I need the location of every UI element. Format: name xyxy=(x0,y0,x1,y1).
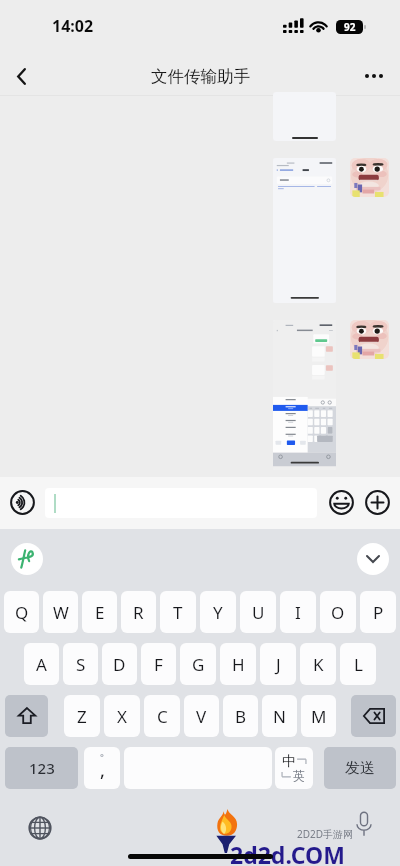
button[interactable]: Switch language xyxy=(28,816,52,840)
staticText: A xyxy=(36,653,47,676)
button[interactable]: B xyxy=(223,695,258,737)
staticText: N xyxy=(273,705,286,728)
button[interactable]: L xyxy=(340,643,376,685)
button[interactable]: Input method xyxy=(11,543,43,575)
button[interactable]: Shift xyxy=(5,695,48,737)
button[interactable]: More options xyxy=(363,488,392,517)
staticText: 2D2D手游网 xyxy=(297,827,354,841)
button[interactable] xyxy=(273,158,336,303)
staticText: 123 xyxy=(29,758,55,778)
staticText: V xyxy=(196,705,207,728)
button[interactable]: Chinese English switch xyxy=(275,747,313,789)
button[interactable]: J xyxy=(260,643,296,685)
staticText: Y xyxy=(213,601,223,624)
button[interactable]: G xyxy=(180,643,216,685)
button[interactable]: Voice input xyxy=(8,488,37,517)
staticText: D xyxy=(113,653,126,676)
button[interactable] xyxy=(273,92,336,141)
button[interactable]: F xyxy=(141,643,176,685)
staticText: B xyxy=(235,705,247,728)
staticText: U xyxy=(252,601,265,624)
staticText: C xyxy=(157,705,168,728)
staticText: ° xyxy=(100,751,104,763)
button[interactable]: P xyxy=(360,591,396,633)
button[interactable]: K xyxy=(300,643,336,685)
button[interactable]: O xyxy=(320,591,356,633)
button[interactable]: More xyxy=(355,57,393,95)
button[interactable]: Backspace xyxy=(351,695,396,737)
staticText: X xyxy=(117,705,127,728)
button[interactable] xyxy=(273,320,336,470)
button[interactable]: Emoji xyxy=(327,488,356,517)
staticText: M xyxy=(311,705,327,728)
button[interactable] xyxy=(350,158,389,197)
staticText: , xyxy=(100,758,105,783)
button[interactable]: V xyxy=(184,695,219,737)
button[interactable]: A xyxy=(24,643,59,685)
button[interactable]: E xyxy=(82,591,117,633)
button[interactable]: N xyxy=(262,695,297,737)
button[interactable]: R xyxy=(121,591,156,633)
button[interactable]: C xyxy=(144,695,180,737)
button[interactable] xyxy=(45,488,317,518)
staticText: P xyxy=(373,601,384,624)
staticText: Z xyxy=(77,705,87,728)
button[interactable]: Hide keyboard xyxy=(357,543,389,575)
staticText: K xyxy=(313,653,324,676)
staticText: J xyxy=(276,653,281,676)
staticText: G xyxy=(192,653,205,676)
button[interactable]: T xyxy=(160,591,196,633)
button[interactable]: H xyxy=(220,643,256,685)
staticText: 中 xyxy=(282,753,296,771)
staticText: I xyxy=(295,601,301,624)
staticText: T xyxy=(173,601,183,624)
staticText: R xyxy=(133,601,144,624)
staticText: W xyxy=(53,601,69,624)
staticText: E xyxy=(95,601,105,624)
button[interactable]: U xyxy=(240,591,276,633)
button[interactable]: M xyxy=(301,695,336,737)
button[interactable]: W xyxy=(43,591,78,633)
button[interactable]: ° xyxy=(84,747,120,789)
staticText: O xyxy=(331,601,345,624)
button[interactable]: Y xyxy=(200,591,236,633)
button[interactable]: X xyxy=(104,695,140,737)
button[interactable]: 123 xyxy=(5,747,78,789)
button[interactable]: Back xyxy=(2,57,40,95)
staticText: F xyxy=(154,653,163,676)
button[interactable] xyxy=(350,320,389,359)
staticText: L xyxy=(354,653,363,676)
staticText: H xyxy=(232,653,245,676)
button[interactable]: Q xyxy=(4,591,39,633)
staticText: 14:02 xyxy=(52,15,94,37)
button[interactable]: D xyxy=(102,643,137,685)
staticText: 英 xyxy=(293,768,305,783)
staticText: 92 xyxy=(344,20,356,34)
button[interactable]: Z xyxy=(64,695,100,737)
button[interactable]: I xyxy=(280,591,316,633)
staticText: S xyxy=(76,653,86,676)
staticText: Q xyxy=(15,601,29,624)
button[interactable]: 发送 xyxy=(324,747,396,789)
staticText: 发送 xyxy=(345,759,375,778)
button[interactable]: S xyxy=(63,643,98,685)
staticText: 文件传输助手 xyxy=(151,66,250,87)
staticText: 2d2d.COM xyxy=(230,839,345,866)
